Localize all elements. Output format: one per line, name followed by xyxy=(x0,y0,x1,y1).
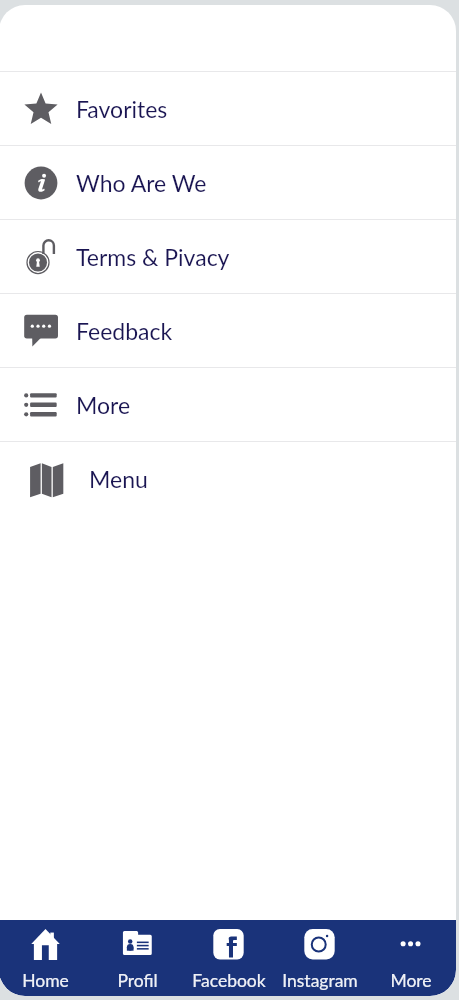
button[interactable]: Feedback xyxy=(0,294,456,367)
button[interactable]: Profil xyxy=(91,920,183,996)
staticText: Instagram xyxy=(282,970,358,991)
button[interactable]: Terms & Pivacy xyxy=(0,220,456,293)
staticText: Who Are We xyxy=(76,169,207,197)
button[interactable]: More xyxy=(365,920,456,996)
staticText: Menu xyxy=(89,465,148,493)
staticText: Home xyxy=(22,970,69,991)
staticText: Favorites xyxy=(76,95,168,123)
button[interactable]: Menu xyxy=(0,442,456,516)
button[interactable]: More xyxy=(0,368,456,441)
button[interactable]: Instagram xyxy=(274,920,365,996)
button[interactable]: Favorites xyxy=(0,72,456,145)
staticText: More xyxy=(390,970,432,991)
staticText: Feedback xyxy=(76,317,173,345)
staticText: Facebook xyxy=(192,970,266,991)
staticText: Terms & Pivacy xyxy=(76,243,230,271)
button[interactable]: Facebook xyxy=(183,920,274,996)
button[interactable]: Home xyxy=(0,920,91,996)
button[interactable]: Who Are We xyxy=(0,146,456,219)
staticText: Profil xyxy=(117,970,158,991)
staticText: More xyxy=(76,391,131,419)
